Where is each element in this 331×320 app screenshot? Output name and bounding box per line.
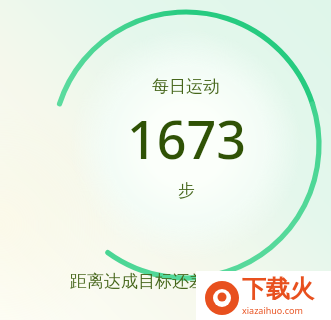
staticText: 距离达成目标还差4327步 — [70, 269, 262, 292]
button[interactable]: 距离达成目标还差4327步 — [40, 264, 291, 296]
staticText: xiazaihuo.com — [242, 304, 303, 316]
staticText: 每日运动 — [152, 76, 220, 97]
staticText: 下载火 — [242, 274, 314, 304]
staticText: 1673 — [127, 103, 246, 174]
button[interactable]: 每日运动 — [86, 76, 286, 216]
other: Watermark — [196, 271, 331, 320]
staticText: 步 — [178, 180, 195, 201]
